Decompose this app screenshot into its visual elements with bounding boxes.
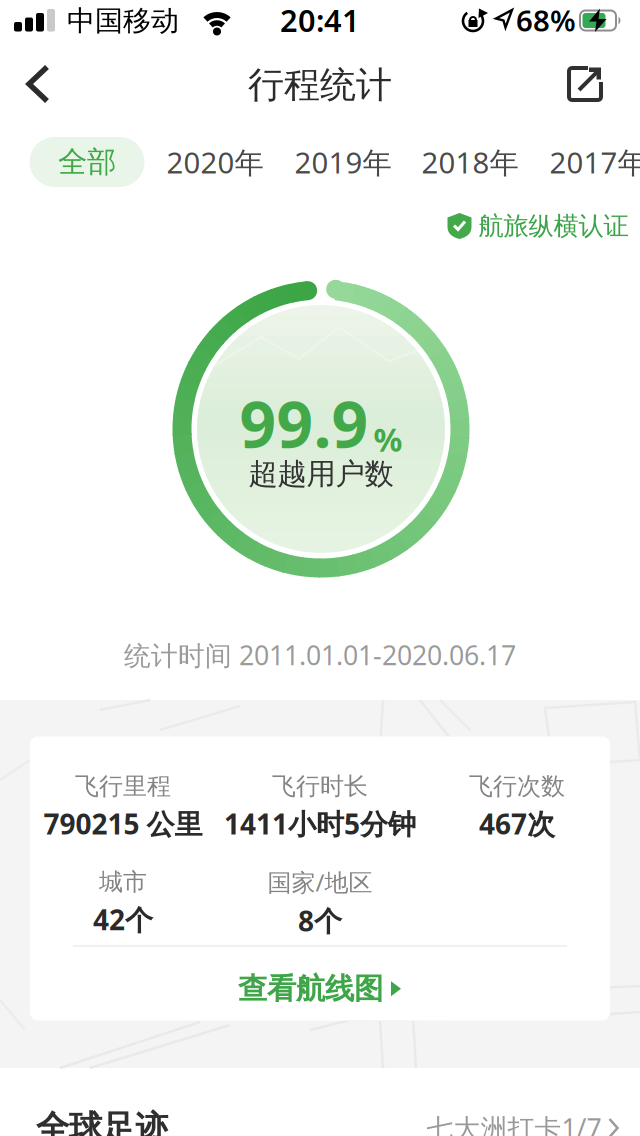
staticText: 467次 [479,805,555,842]
staticText: 城市 [99,867,147,897]
button[interactable]: 七大洲打卡1/7 [426,1110,619,1136]
staticText: 超越用户数 [248,456,393,492]
staticText: 七大洲打卡1/7 [426,1110,601,1136]
staticText: 68% [516,0,576,39]
button[interactable]: 全部 [29,137,144,187]
staticText: 统计时间 2011.01.01-2020.06.17 [124,637,516,673]
staticText: 8个 [298,902,342,939]
staticText: 飞行里程 [75,771,171,801]
staticText: 42个 [93,901,153,938]
staticText: 20:41 [280,0,360,40]
button[interactable]: 2018年 [421,142,518,181]
staticText: % [373,418,402,460]
staticText: 飞行次数 [469,771,565,801]
staticText: 2018年 [421,142,518,181]
button[interactable]: 2020年 [166,142,263,181]
staticText: 行程统计 [248,63,392,107]
button[interactable]: 2019年 [294,142,391,181]
button[interactable]: Back [20,62,64,106]
staticText: 790215 公里 [43,805,202,842]
staticText: 全球足迹 [36,1107,168,1136]
button[interactable]: 2017年 [549,142,640,181]
staticText: 2020年 [166,142,263,181]
staticText: 国家/地区 [267,866,372,898]
staticText: 99.9 [239,380,368,465]
staticText: 飞行时长 [272,771,368,801]
staticText: 全部 [58,144,116,180]
button[interactable]: 查看航线图 [238,947,402,1027]
staticText: 2019年 [294,142,391,181]
staticText: 1411小时5分钟 [224,805,416,842]
staticText: 查看航线图 [238,971,383,1007]
staticText: 2017年 [549,142,640,181]
staticText: 航旅纵横认证 [478,210,628,241]
staticText: 中国移动 [67,4,179,38]
button[interactable]: Share [564,62,608,106]
